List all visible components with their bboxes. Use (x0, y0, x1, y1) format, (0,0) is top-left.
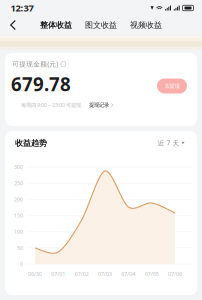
staticText: 整体收益 (40, 20, 72, 30)
button[interactable]: 图文收益 (81, 15, 121, 35)
button[interactable]: 近 7 天 (153, 136, 189, 150)
button[interactable]: 整体收益 (34, 15, 78, 35)
staticText: 300 (14, 163, 23, 171)
staticText: 250 (14, 180, 23, 187)
staticText: 可提现金额(元) (12, 60, 58, 68)
staticText: 近 7 天 (157, 139, 179, 147)
staticText: 提现记录 (89, 102, 109, 108)
staticText: 07/03 (98, 270, 112, 278)
staticText: 07/05 (145, 270, 159, 278)
staticText: 0 (20, 260, 23, 268)
staticText: 150 (14, 212, 23, 219)
button[interactable]: Back (3, 15, 23, 35)
button[interactable]: 视频收益 (126, 15, 166, 35)
staticText: 07/02 (75, 270, 89, 278)
staticText: 视频收益 (130, 20, 162, 30)
staticText: 200 (14, 196, 23, 203)
button[interactable]: 提现记录 (89, 102, 113, 108)
staticText: 07/06 (168, 270, 182, 278)
staticText: 06/30 (28, 270, 42, 278)
staticText: 每周四 9:00 ~ 23:00 可提现 (21, 101, 81, 109)
staticText: 12:37 (10, 2, 33, 14)
staticText: 07/04 (121, 270, 135, 278)
staticText: 679.78 (11, 72, 71, 96)
staticText: 图文收益 (85, 20, 117, 30)
button[interactable]: 去提现 (157, 78, 187, 93)
staticText: 去提现 (164, 83, 179, 89)
staticText: 07/01 (51, 270, 65, 278)
staticText: 100 (14, 228, 23, 235)
staticText: 50 (17, 244, 23, 251)
staticText: 收益趋势 (15, 138, 47, 148)
